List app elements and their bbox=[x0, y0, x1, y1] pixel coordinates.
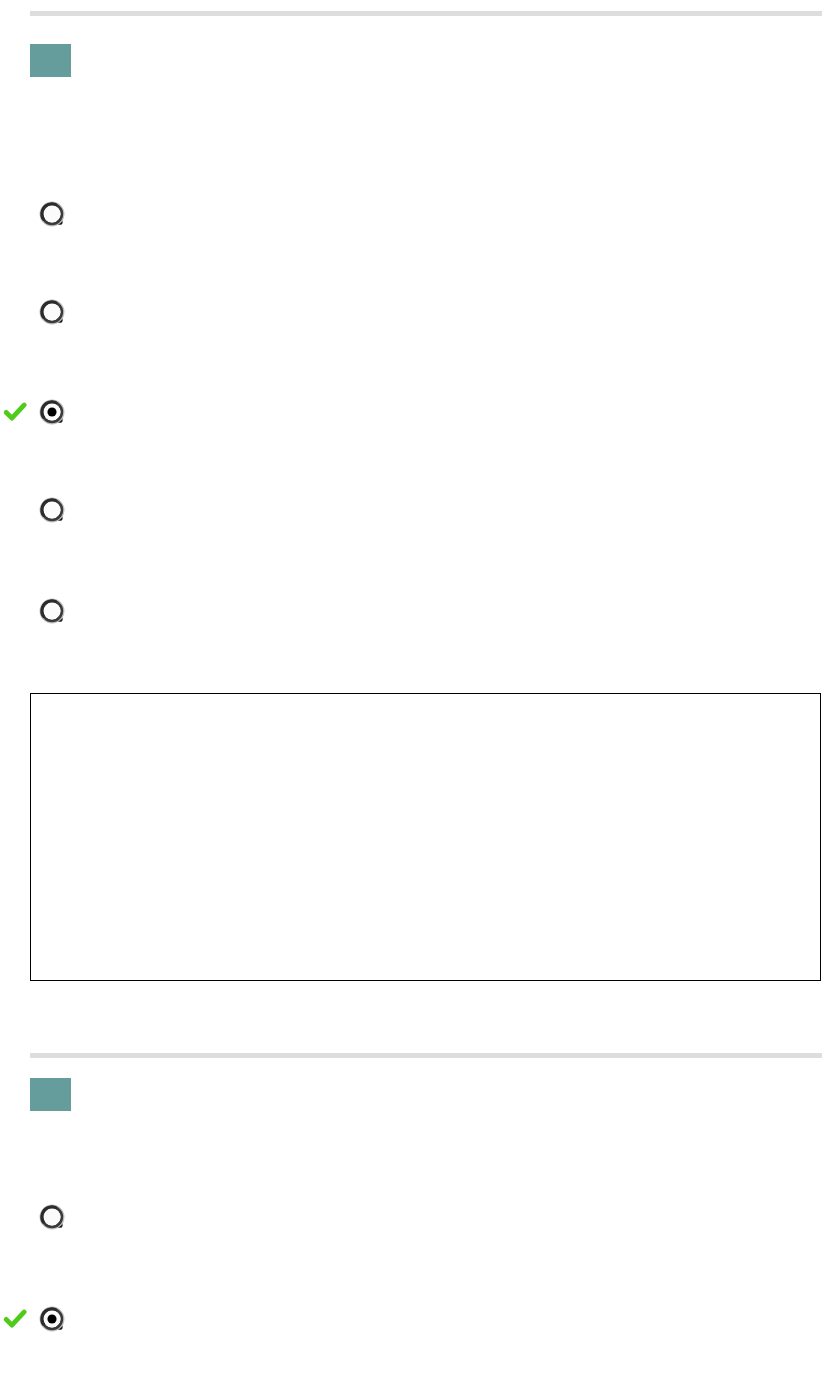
button[interactable]: Option B, selected bbox=[0, 1299, 822, 1339]
button[interactable]: Option 4 bbox=[0, 490, 822, 530]
button[interactable]: Option 1 bbox=[0, 194, 822, 234]
button[interactable]: Option A bbox=[0, 1197, 822, 1237]
button[interactable]: Option 5 bbox=[0, 591, 822, 631]
button[interactable]: Option 2 bbox=[0, 292, 822, 332]
button[interactable]: Option 3, selected bbox=[0, 392, 822, 432]
button[interactable]: Content frame bbox=[30, 693, 821, 981]
